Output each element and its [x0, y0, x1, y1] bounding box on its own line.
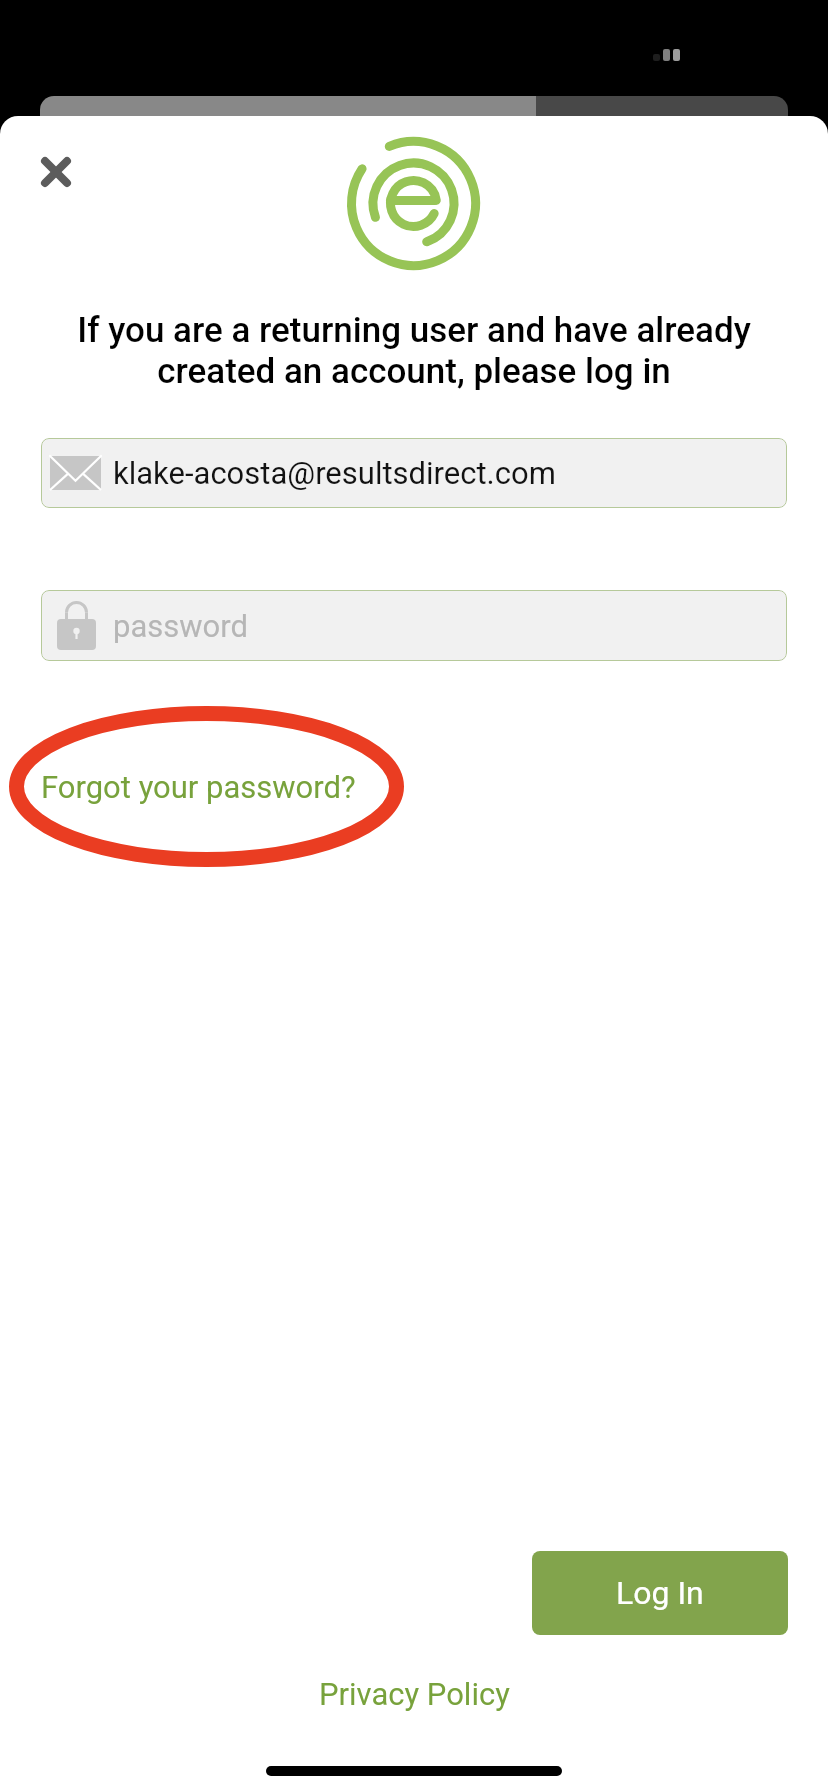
- staticText: Log In: [616, 1574, 704, 1612]
- staticText: If you are a returning user and have alr…: [30, 310, 798, 392]
- staticText: Forgot your password?: [41, 769, 356, 805]
- button[interactable]: Log In: [532, 1551, 788, 1635]
- button[interactable]: klake-acosta@resultsdirect.com: [41, 438, 787, 508]
- button[interactable]: Forgot your password?: [41, 769, 356, 805]
- staticText: Privacy Policy: [319, 1676, 510, 1712]
- button[interactable]: Close: [26, 142, 86, 202]
- staticText: password: [113, 608, 248, 644]
- staticText: klake-acosta@resultsdirect.com: [113, 455, 556, 491]
- button[interactable]: Privacy Policy: [319, 1676, 510, 1712]
- button[interactable]: password: [41, 590, 787, 661]
